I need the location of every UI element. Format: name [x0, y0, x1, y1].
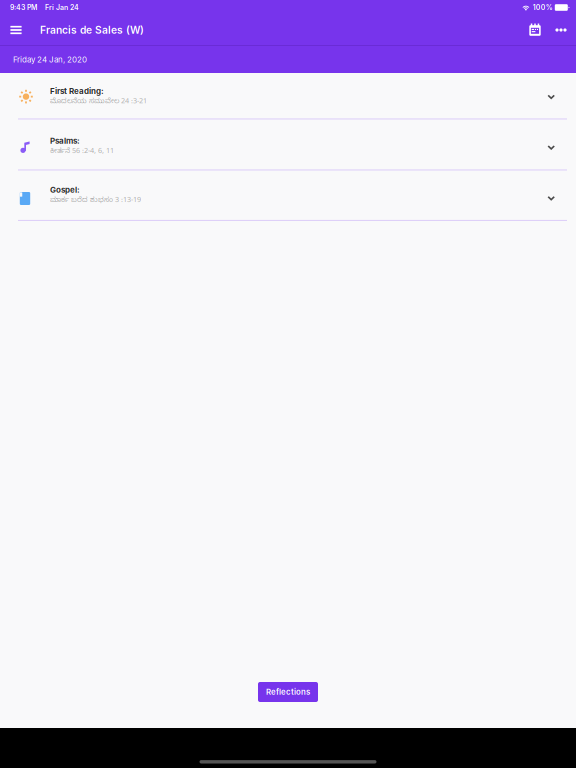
staticText: ಮಾರ್ಕ ಬರೆದ ಶುಭಸಂ 3 :13-19 [50, 196, 141, 206]
button[interactable]: First Reading: [0, 73, 576, 119]
staticText: Francis de Sales (W) [40, 24, 144, 36]
button[interactable]: Menu [0, 15, 32, 45]
staticText: Friday 24 Jan, 2020 [13, 55, 87, 64]
staticText: Reflections [266, 687, 310, 697]
staticText: Fri Jan 24 [45, 3, 79, 12]
button[interactable]: Psalms: [0, 119, 576, 170]
staticText: First Reading: [50, 86, 104, 96]
button[interactable]: Gospel: [0, 170, 576, 221]
button[interactable]: More options [550, 15, 572, 45]
staticText: Gospel: [50, 185, 80, 195]
staticText: 100% [533, 3, 553, 12]
staticText: ಕೀರ್ತನೆ 56 :2-4, 6, 11 [50, 147, 114, 157]
button[interactable]: Calendar [523, 15, 547, 45]
staticText: 9:43 PM [10, 3, 37, 12]
staticText: Psalms: [50, 136, 80, 146]
button[interactable]: Reflections [258, 682, 318, 702]
staticText: ಮೊದಲನೆಯ ಸಮುವೇಲ 24 :3-21 [50, 97, 147, 107]
